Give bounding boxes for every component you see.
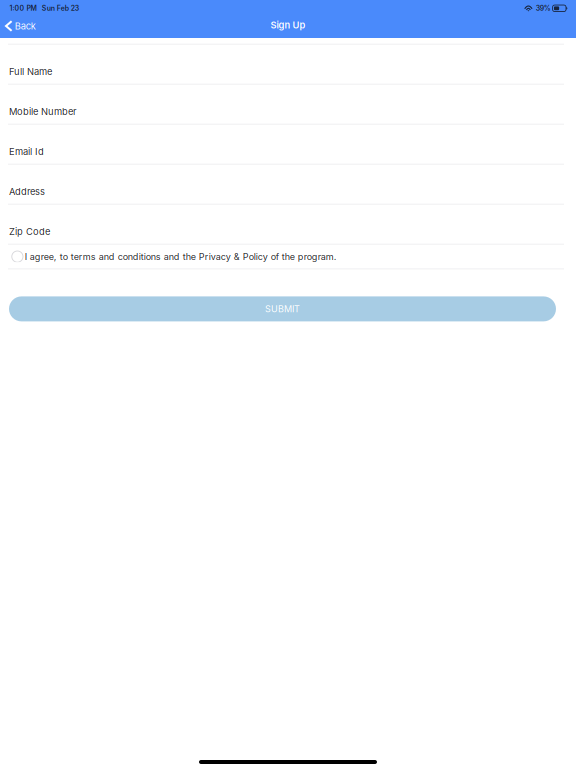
staticText: Address [9, 186, 45, 197]
button[interactable]: Address [0, 165, 576, 205]
staticText: Email Id [9, 146, 44, 157]
staticText: Mobile Number [9, 106, 77, 117]
staticText: I agree, to terms and conditions and the… [25, 251, 337, 262]
button[interactable]: Email Id [0, 125, 576, 165]
staticText: Sign Up [270, 20, 305, 31]
button[interactable]: Zip Code [0, 205, 576, 245]
staticText: Full Name [9, 66, 52, 77]
button[interactable]: I agree, to terms and conditions and the… [0, 245, 576, 269]
staticText: SUBMIT [265, 303, 300, 314]
staticText: Back [15, 20, 36, 32]
staticText: 1:00 PM [9, 4, 36, 12]
staticText: Sun Feb 23 [42, 4, 79, 12]
button[interactable]: Full Name [0, 45, 576, 85]
button[interactable]: Mobile Number [0, 85, 576, 125]
staticText: Zip Code [9, 226, 50, 237]
button[interactable]: SUBMIT [9, 296, 556, 321]
staticText: 39% [536, 4, 551, 12]
button[interactable]: Back [0, 14, 44, 38]
